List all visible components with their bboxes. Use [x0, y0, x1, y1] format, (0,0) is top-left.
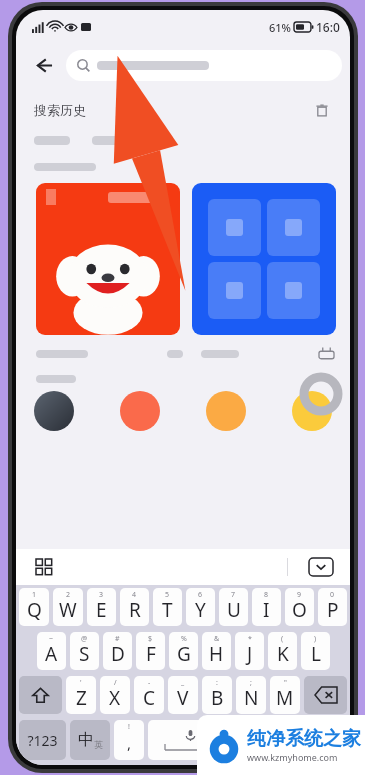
staticText: M: [276, 685, 294, 711]
staticText: Z: [76, 685, 87, 711]
staticText: _: [181, 678, 185, 688]
staticText: &: [214, 634, 220, 644]
staticText: D: [111, 641, 125, 667]
staticText: 5: [165, 590, 170, 600]
staticText: ": [284, 678, 287, 688]
button[interactable]: !: [114, 720, 144, 760]
button[interactable]: Backspace: [304, 676, 347, 714]
staticText: :: [216, 678, 218, 688]
button[interactable]: _: [168, 676, 198, 714]
staticText: L: [311, 641, 321, 667]
button[interactable]: ~: [37, 632, 66, 670]
button[interactable]: 7: [219, 588, 248, 626]
button[interactable]: App 3: [206, 391, 246, 431]
button[interactable]: App 2: [120, 391, 160, 431]
button[interactable]: ": [270, 676, 300, 714]
staticText: O: [292, 597, 307, 623]
staticText: G: [177, 641, 191, 667]
staticText: 2: [66, 590, 71, 600]
button[interactable]: Clear history: [310, 98, 334, 122]
button[interactable]: 0: [318, 588, 347, 626]
staticText: 中: [78, 730, 94, 750]
button[interactable]: :: [202, 676, 232, 714]
staticText: 7: [231, 590, 236, 600]
staticText: J: [247, 641, 253, 667]
staticText: T: [162, 597, 173, 623]
staticText: ?123: [27, 731, 58, 750]
button[interactable]: Space: [148, 720, 232, 760]
staticText: (: [281, 634, 284, 644]
button[interactable]: ?: [236, 720, 260, 760]
button[interactable]: App 1: [34, 391, 74, 431]
button[interactable]: 8: [252, 588, 281, 626]
button[interactable]: (: [268, 632, 297, 670]
button[interactable]: *: [235, 632, 264, 670]
button[interactable]: App 4: [292, 391, 332, 431]
button[interactable]: %: [169, 632, 198, 670]
button[interactable]: Emoji: [264, 720, 294, 760]
button[interactable]: ': [66, 676, 96, 714]
button[interactable]: #: [103, 632, 132, 670]
button[interactable]: 1: [19, 588, 49, 626]
button[interactable]: ): [301, 632, 330, 670]
staticText: ': [80, 678, 82, 688]
button[interactable]: 4: [120, 588, 149, 626]
staticText: B: [211, 685, 224, 711]
staticText: 4: [132, 590, 137, 600]
staticText: !: [128, 722, 130, 732]
button[interactable]: 6: [186, 588, 215, 626]
staticText: 纯净系统之家: [247, 727, 361, 751]
staticText: R: [129, 597, 141, 623]
button[interactable]: ?123: [19, 720, 66, 760]
staticText: %: [181, 634, 187, 644]
button[interactable]: 2: [53, 588, 83, 626]
staticText: 搜索: [309, 731, 337, 749]
button[interactable]: -: [134, 676, 164, 714]
staticText: 61%: [269, 20, 291, 35]
staticText: -: [148, 678, 151, 688]
button[interactable]: [66, 50, 342, 81]
button[interactable]: Keyboard menu: [30, 553, 58, 581]
staticText: H: [209, 641, 224, 667]
button[interactable]: 搜索: [298, 720, 347, 760]
staticText: 3: [99, 590, 104, 600]
staticText: ;: [250, 678, 252, 688]
staticText: X: [109, 685, 121, 711]
button[interactable]: Shift: [19, 676, 62, 714]
button[interactable]: 5: [153, 588, 182, 626]
staticText: I: [263, 597, 270, 623]
button[interactable]: &: [202, 632, 231, 670]
staticText: 8: [264, 590, 269, 600]
button[interactable]: ;: [236, 676, 266, 714]
button[interactable]: Hide keyboard: [306, 556, 336, 578]
button[interactable]: /: [100, 676, 130, 714]
staticText: V: [177, 685, 189, 711]
staticText: ?: [245, 731, 251, 749]
staticText: Q: [27, 597, 42, 623]
button[interactable]: $: [136, 632, 165, 670]
staticText: Y: [195, 597, 206, 623]
staticText: 16:0: [316, 19, 340, 35]
staticText: A: [45, 641, 58, 667]
button[interactable]: 9: [285, 588, 314, 626]
staticText: 搜索历史: [34, 102, 86, 118]
staticText: 0: [330, 590, 335, 600]
staticText: 6: [198, 590, 203, 600]
staticText: C: [143, 685, 156, 711]
staticText: W: [59, 597, 77, 623]
button[interactable]: Back: [24, 46, 62, 84]
staticText: /: [114, 678, 117, 688]
button[interactable]: 3: [87, 588, 116, 626]
button[interactable]: [36, 183, 180, 335]
staticText: ,: [127, 733, 132, 753]
staticText: ): [314, 634, 317, 644]
staticText: K: [277, 641, 289, 667]
staticText: #: [115, 634, 120, 644]
button[interactable]: @: [70, 632, 99, 670]
staticText: F: [146, 641, 156, 667]
staticText: U: [227, 597, 241, 623]
button[interactable]: [192, 183, 336, 335]
staticText: 9: [297, 590, 302, 600]
staticText: S: [79, 641, 90, 667]
button[interactable]: 中: [70, 720, 110, 760]
